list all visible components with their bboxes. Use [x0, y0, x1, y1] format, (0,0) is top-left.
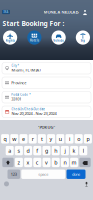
- staticText: Start Booking For :: [2, 19, 64, 28]
- button[interactable]: Postal Code *: [2, 91, 91, 103]
- staticText: Hotels: [30, 39, 39, 42]
- button[interactable]: Vehicle: [51, 30, 66, 45]
- button[interactable]: v: [42, 158, 50, 167]
- button[interactable]: p: [84, 134, 92, 143]
- staticText: k: [73, 147, 76, 154]
- staticText: b: [54, 159, 57, 166]
- button[interactable]: c: [33, 158, 41, 167]
- staticText: Postal Code *: [11, 93, 30, 96]
- staticText: j: [64, 147, 65, 154]
- button[interactable]: Account: [82, 9, 88, 15]
- button[interactable]: Check-In/Check-Out date: [2, 106, 91, 117]
- staticText: y: [50, 135, 53, 142]
- button[interactable]: g: [42, 146, 50, 155]
- staticText: m: [72, 159, 77, 166]
- staticText: Flights: [6, 39, 15, 42]
- staticText: c: [36, 159, 39, 166]
- staticText: r: [32, 135, 34, 142]
- staticText: n: [63, 159, 66, 166]
- button[interactable]: f: [33, 146, 41, 155]
- staticText: u: [59, 135, 62, 142]
- button[interactable]: x: [24, 158, 32, 167]
- staticText: MONICA NICOLAIS: [44, 9, 79, 15]
- staticText: a: [8, 147, 11, 154]
- staticText: s: [17, 147, 20, 154]
- staticText: done: [72, 172, 80, 177]
- button[interactable]: u: [56, 134, 64, 143]
- button[interactable]: s: [15, 146, 23, 155]
- staticText: space: [38, 172, 48, 177]
- button[interactable]: t: [38, 134, 46, 143]
- button[interactable]: d: [24, 146, 32, 155]
- staticText: Vehicle: [53, 39, 64, 42]
- button[interactable]: z: [15, 158, 23, 167]
- staticText: f: [36, 147, 38, 154]
- button[interactable]: h: [52, 146, 60, 155]
- staticText: v: [45, 159, 48, 166]
- staticText: d: [27, 147, 30, 154]
- button[interactable]: l: [79, 146, 87, 155]
- staticText: 33101: [11, 96, 21, 102]
- staticText: i: [69, 135, 70, 142]
- button[interactable]: Trip: [76, 30, 90, 45]
- button[interactable]: y: [47, 134, 55, 143]
- button[interactable]: w: [10, 134, 18, 143]
- staticText: q: [4, 135, 7, 142]
- staticText: t: [41, 135, 43, 142]
- button[interactable]: done: [66, 169, 85, 179]
- staticText: h: [54, 147, 57, 154]
- button[interactable]: Dictation: [84, 181, 89, 186]
- staticText: w: [12, 135, 16, 142]
- staticText: l: [83, 147, 84, 154]
- staticText: e: [22, 135, 25, 142]
- button[interactable]: o: [75, 134, 83, 143]
- button[interactable]: Hotels: [27, 30, 41, 45]
- button[interactable]: j: [61, 146, 69, 155]
- staticText: z: [17, 159, 20, 166]
- button[interactable]: q: [1, 134, 9, 143]
- staticText: x: [27, 159, 30, 166]
- button[interactable]: 123: [7, 169, 20, 179]
- button[interactable]: m: [70, 158, 78, 167]
- staticText: “POKUG”: [37, 125, 55, 130]
- staticText: Province: [11, 80, 26, 85]
- button[interactable]: b: [52, 158, 60, 167]
- staticText: Trip: [80, 39, 85, 42]
- button[interactable]: a: [6, 146, 14, 155]
- staticText: IKA: [3, 10, 8, 14]
- button[interactable]: [79, 158, 91, 167]
- button[interactable]: Home: [2, 10, 10, 14]
- button[interactable]: Flights: [3, 30, 17, 45]
- button[interactable]: k: [70, 146, 78, 155]
- button[interactable]: space: [21, 169, 65, 179]
- button[interactable]: e: [19, 134, 27, 143]
- button[interactable]: City *: [2, 62, 91, 74]
- button[interactable]: [2, 158, 14, 167]
- button[interactable]: r: [29, 134, 37, 143]
- staticText: p: [86, 135, 89, 142]
- staticText: Nov 20,2024 - Nov 23,2024: [11, 111, 56, 116]
- button[interactable]: Emoji: [4, 181, 9, 186]
- staticText: Miami, FL (MIA): [11, 67, 40, 73]
- staticText: City *: [11, 64, 18, 67]
- staticText: o: [77, 135, 80, 142]
- staticText: g: [45, 147, 48, 154]
- staticText: Check-In/Check-Out date: [11, 107, 45, 111]
- staticText: 123: [11, 172, 17, 177]
- button[interactable]: i: [65, 134, 73, 143]
- button[interactable]: n: [61, 158, 69, 167]
- button[interactable]: Province: [2, 77, 91, 88]
